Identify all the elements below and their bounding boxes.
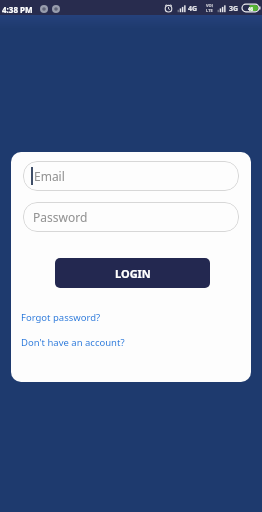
button[interactable]: Don't have an account? <box>21 336 125 349</box>
staticText: LOGIN <box>115 266 151 281</box>
staticText: VO) <box>206 3 214 8</box>
staticText: 4:38 PM <box>2 4 33 15</box>
staticText: 3G <box>229 4 239 14</box>
staticText: 4G <box>188 4 198 14</box>
button[interactable]: Password <box>23 202 239 232</box>
button[interactable]: Email <box>23 161 239 191</box>
staticText: 46 <box>248 6 254 12</box>
button[interactable]: Forgot password? <box>21 311 101 324</box>
button[interactable]: LOGIN <box>55 258 210 288</box>
staticText: Password <box>33 209 88 225</box>
staticText: Don't have an account? <box>21 336 125 349</box>
staticText: LTE <box>206 8 213 13</box>
staticText: Email <box>34 168 65 184</box>
staticText: Forgot password? <box>21 311 101 324</box>
